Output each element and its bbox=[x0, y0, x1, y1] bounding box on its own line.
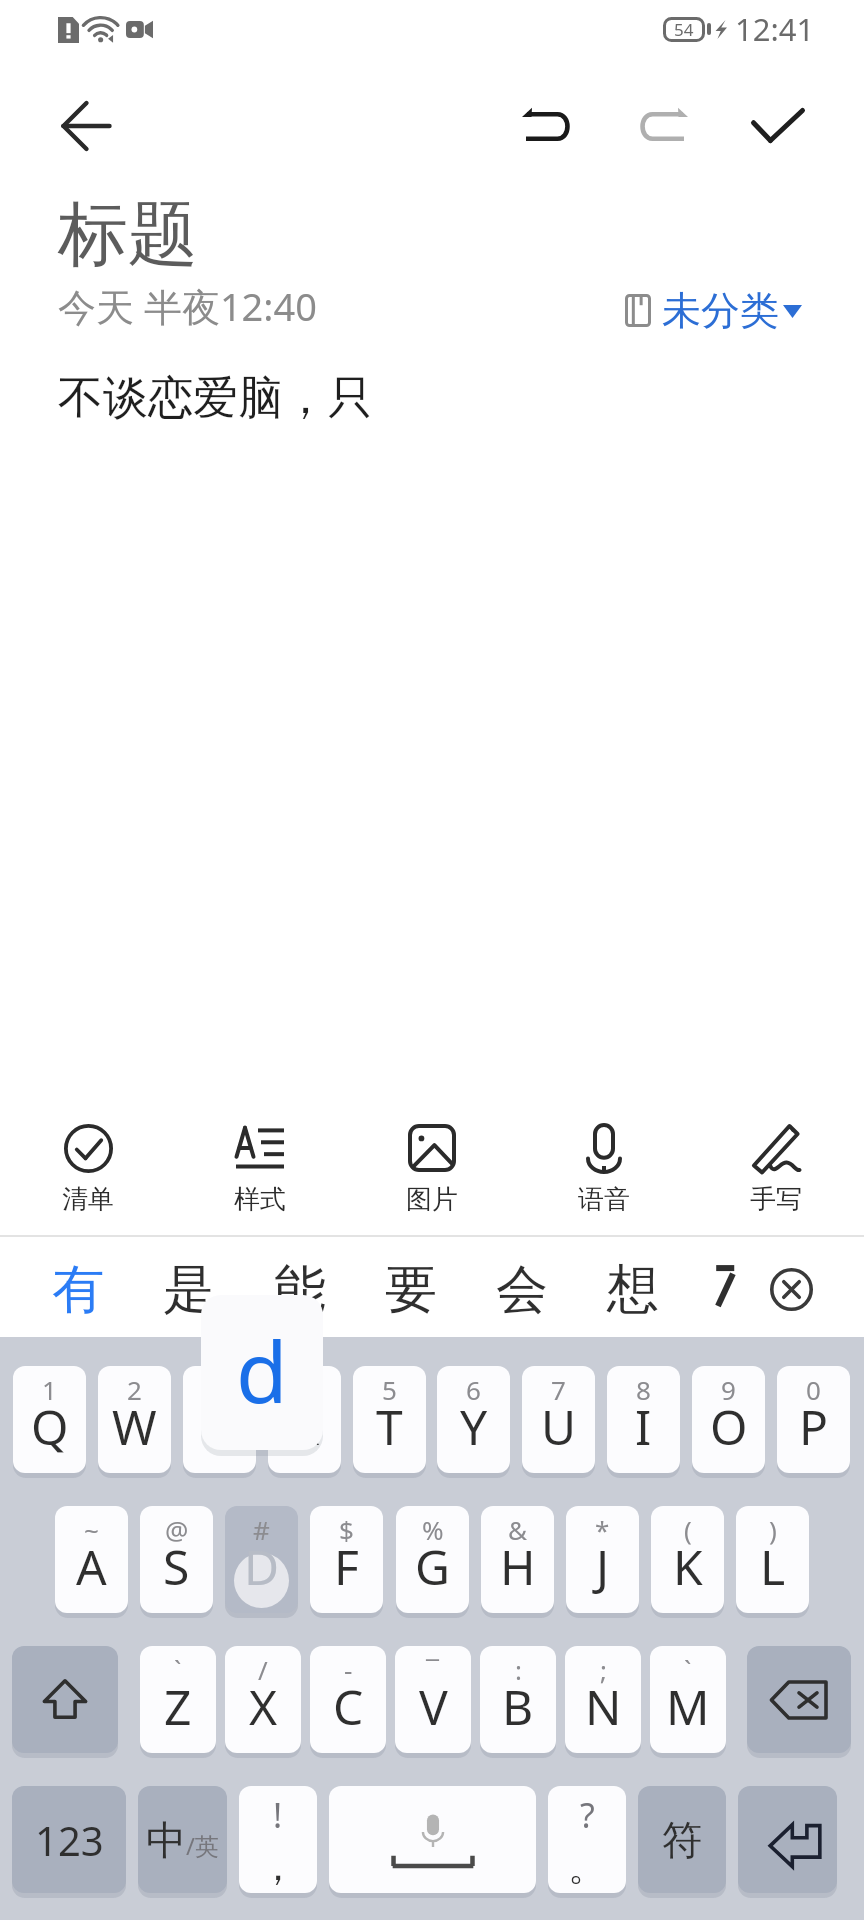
staticText: ! bbox=[273, 1792, 283, 1838]
staticText: J bbox=[596, 1534, 610, 1599]
staticText: U bbox=[541, 1394, 577, 1459]
button[interactable]: Undo bbox=[491, 70, 603, 182]
button[interactable]: 8 bbox=[607, 1366, 680, 1473]
button[interactable]: # bbox=[225, 1506, 298, 1613]
button[interactable]: 能 bbox=[244, 1237, 355, 1337]
button[interactable]: 3 bbox=[183, 1366, 256, 1473]
button[interactable]: 手写 bbox=[692, 1109, 860, 1235]
button[interactable]: Shift bbox=[12, 1646, 118, 1753]
button[interactable]: % bbox=[396, 1506, 469, 1613]
button[interactable]: 中 bbox=[138, 1786, 227, 1893]
staticText: 9 bbox=[721, 1372, 736, 1407]
button[interactable]: Backspace bbox=[747, 1646, 851, 1753]
button[interactable]: 4 bbox=[268, 1366, 341, 1473]
button[interactable]: ? bbox=[548, 1786, 626, 1893]
staticText: X bbox=[249, 1674, 278, 1739]
button[interactable]: 未分类 bbox=[625, 286, 802, 335]
button[interactable]: / bbox=[225, 1646, 301, 1753]
button[interactable]: - bbox=[310, 1646, 386, 1753]
staticText: 。 bbox=[568, 1843, 606, 1891]
staticText: $ bbox=[339, 1512, 354, 1547]
staticText: 7 bbox=[551, 1372, 566, 1407]
other: Shift bbox=[41, 1676, 89, 1724]
button[interactable]: 2 bbox=[98, 1366, 171, 1473]
staticText: O bbox=[710, 1394, 748, 1459]
staticText: 8 bbox=[636, 1372, 651, 1407]
button[interactable]: ` bbox=[140, 1646, 216, 1753]
button[interactable]: 5 bbox=[353, 1366, 426, 1473]
staticText: M bbox=[666, 1674, 710, 1739]
staticText: / bbox=[258, 1652, 268, 1687]
button[interactable]: $ bbox=[310, 1506, 383, 1613]
button[interactable]: Done bbox=[722, 69, 834, 181]
button[interactable]: 想 bbox=[577, 1237, 688, 1337]
button[interactable]: * bbox=[566, 1506, 639, 1613]
staticText: W bbox=[112, 1394, 157, 1459]
button[interactable]: ; bbox=[565, 1646, 641, 1753]
button[interactable]: 样式 bbox=[176, 1109, 344, 1235]
button[interactable]: 6 bbox=[437, 1366, 510, 1473]
staticText: 123 bbox=[35, 1813, 104, 1867]
staticText: E bbox=[206, 1394, 233, 1459]
staticText: 清单 bbox=[62, 1183, 114, 1216]
staticText: 会 bbox=[496, 1257, 548, 1323]
button[interactable]: 符 bbox=[638, 1786, 726, 1893]
staticText: 54 bbox=[674, 18, 694, 41]
button[interactable]: 会 bbox=[466, 1237, 577, 1337]
button[interactable]: 图片 bbox=[348, 1109, 516, 1235]
button[interactable]: 0 bbox=[777, 1366, 850, 1473]
button[interactable]: 要 bbox=[355, 1237, 466, 1337]
button[interactable]: Redo bbox=[607, 70, 719, 182]
staticText: G bbox=[415, 1534, 450, 1599]
button[interactable]: 语音 bbox=[520, 1109, 688, 1235]
staticText: ? bbox=[580, 1792, 595, 1838]
staticText: % bbox=[422, 1512, 444, 1547]
staticText: K bbox=[673, 1534, 703, 1599]
staticText: A bbox=[76, 1534, 107, 1599]
button[interactable]: @ bbox=[140, 1506, 213, 1613]
button[interactable]: 有 bbox=[22, 1237, 133, 1337]
button[interactable]: Back bbox=[30, 70, 142, 182]
staticText: 12:41 bbox=[735, 8, 815, 50]
staticText: C bbox=[333, 1674, 364, 1739]
staticText: 语音 bbox=[578, 1183, 630, 1216]
button[interactable]: Space bbox=[329, 1786, 536, 1893]
button[interactable]: Close keyboard bbox=[751, 1237, 831, 1337]
button[interactable]: 清单 bbox=[4, 1109, 172, 1235]
staticText: S bbox=[163, 1534, 190, 1599]
staticText: * bbox=[595, 1512, 610, 1547]
staticText: ， bbox=[259, 1843, 297, 1891]
staticText: 0 bbox=[806, 1372, 821, 1407]
button[interactable]: Enter bbox=[738, 1786, 837, 1893]
button[interactable]: 7 bbox=[522, 1366, 595, 1473]
staticText: ( bbox=[684, 1512, 692, 1547]
staticText: 5 bbox=[382, 1372, 397, 1407]
button[interactable]: 1 bbox=[13, 1366, 86, 1473]
other: Backspace bbox=[769, 1679, 829, 1721]
button[interactable]: ` bbox=[650, 1646, 726, 1753]
button[interactable]: ~ bbox=[55, 1506, 128, 1613]
staticText: Y bbox=[460, 1394, 488, 1459]
button[interactable]: 9 bbox=[692, 1366, 765, 1473]
staticText: /英 bbox=[186, 1829, 219, 1862]
button[interactable]: ¯ bbox=[395, 1646, 471, 1753]
button[interactable]: More candidates bbox=[685, 1237, 765, 1337]
button[interactable]: ! bbox=[239, 1786, 317, 1893]
staticText: ) bbox=[769, 1512, 777, 1547]
staticText: N bbox=[585, 1674, 622, 1739]
staticText: ` bbox=[174, 1652, 182, 1687]
staticText: 要 bbox=[385, 1257, 437, 1323]
button[interactable]: ) bbox=[736, 1506, 809, 1613]
button[interactable]: 是 bbox=[133, 1237, 244, 1337]
staticText: Z bbox=[164, 1674, 192, 1739]
button[interactable]: ( bbox=[651, 1506, 724, 1613]
staticText: D bbox=[244, 1534, 280, 1599]
button[interactable]: : bbox=[480, 1646, 556, 1753]
staticText: F bbox=[334, 1534, 359, 1599]
button[interactable]: 123 bbox=[12, 1786, 126, 1893]
button[interactable]: & bbox=[481, 1506, 554, 1613]
staticText: B bbox=[502, 1674, 534, 1739]
staticText: ~ bbox=[84, 1512, 99, 1547]
